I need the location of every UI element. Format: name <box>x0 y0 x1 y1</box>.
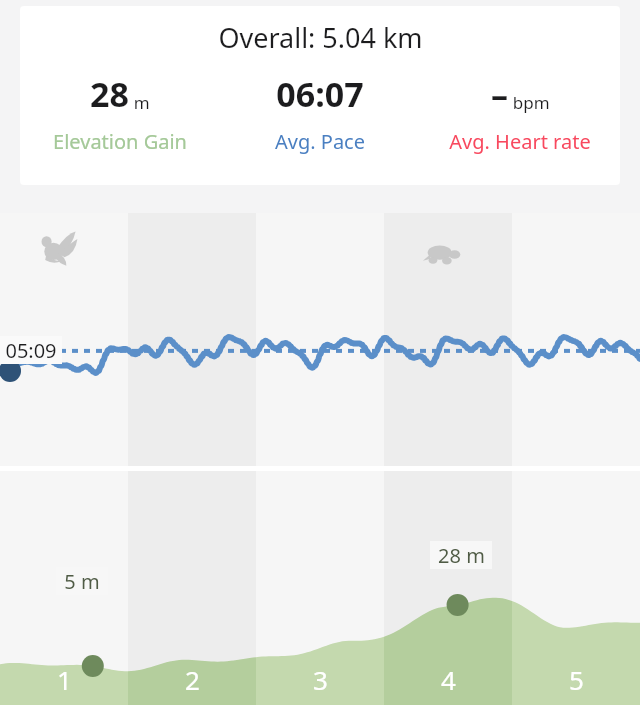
button[interactable]: 5 m <box>0 471 640 705</box>
button[interactable]: 28 <box>20 68 220 162</box>
staticText: Avg. Pace <box>275 128 365 155</box>
other: Slow pace <box>420 231 468 279</box>
staticText: 05:09 <box>5 337 57 364</box>
staticText: 1 <box>57 662 72 697</box>
staticText: 4 <box>441 662 456 697</box>
staticText: Elevation Gain <box>53 128 187 155</box>
staticText: 5 m <box>64 568 100 595</box>
button[interactable]: Fast pace <box>0 213 640 466</box>
staticText: 28 m <box>438 542 485 569</box>
button[interactable]: – <box>420 68 620 162</box>
button[interactable]: 06:07 <box>220 68 420 162</box>
button[interactable]: Overall: 5.04 km <box>20 6 620 185</box>
staticText: 5 <box>569 662 584 697</box>
other: Fast pace <box>36 227 82 273</box>
staticText: 2 <box>185 662 200 697</box>
staticText: bpm <box>508 91 550 114</box>
staticText: 28 <box>90 71 129 117</box>
staticText: m <box>129 91 150 114</box>
staticText: Overall: 5.04 km <box>218 19 423 56</box>
staticText: Avg. Heart rate <box>449 128 591 155</box>
staticText: 06:07 <box>276 71 364 117</box>
staticText: 3 <box>313 662 328 697</box>
staticText: – <box>491 71 508 117</box>
